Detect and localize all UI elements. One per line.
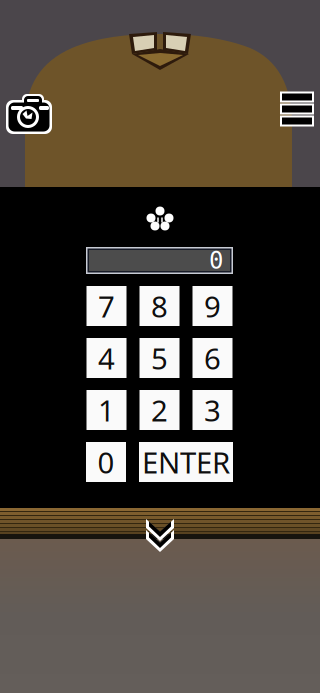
staticText: 9 — [204, 286, 221, 325]
staticText: 5 — [151, 338, 168, 377]
staticText: ENTER — [142, 442, 230, 481]
button[interactable]: 2 — [139, 390, 179, 430]
staticText: 8 — [151, 286, 168, 325]
staticText: 4 — [98, 338, 115, 377]
staticText: 3 — [204, 390, 221, 429]
button[interactable]: 3 — [192, 390, 232, 430]
button[interactable]: 7 — [86, 286, 126, 326]
button[interactable]: 0 — [86, 442, 126, 482]
button[interactable]: ENTER — [139, 442, 233, 482]
staticText: 0 — [209, 247, 223, 274]
staticText: 0 — [97, 442, 114, 481]
staticText: 7 — [98, 286, 115, 325]
button[interactable]: Close keypad — [146, 519, 174, 552]
staticText: 6 — [204, 338, 221, 377]
button[interactable]: 4 — [86, 338, 126, 378]
button[interactable]: Menu — [279, 92, 315, 126]
button[interactable]: 1 — [86, 390, 126, 430]
staticText: 1 — [98, 390, 115, 429]
button[interactable]: 9 — [192, 286, 232, 326]
button[interactable]: Camera — [6, 92, 52, 134]
staticText: 2 — [151, 390, 168, 429]
button[interactable]: 6 — [192, 338, 232, 378]
button[interactable]: 8 — [139, 286, 179, 326]
button[interactable]: 5 — [139, 338, 179, 378]
